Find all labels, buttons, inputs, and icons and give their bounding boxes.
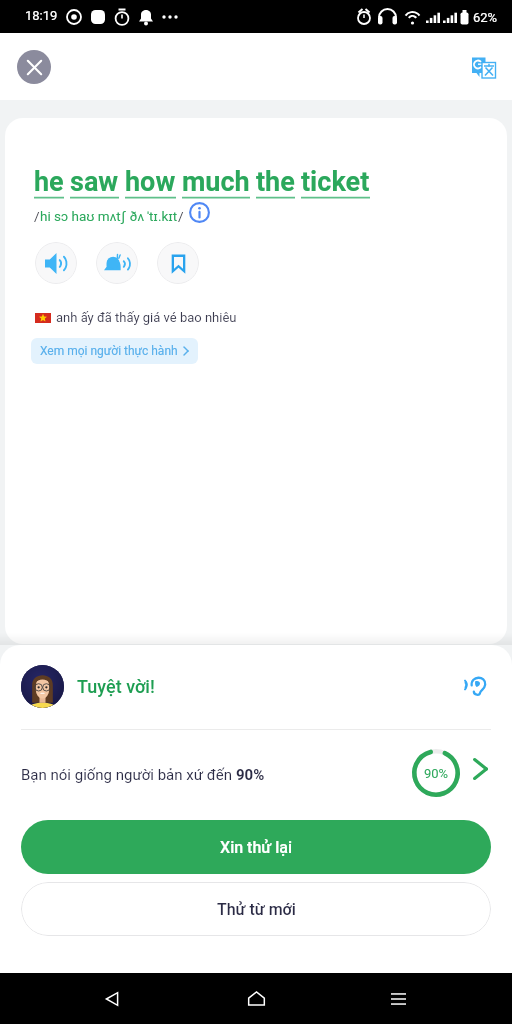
- button[interactable]: Translate: [466, 51, 500, 85]
- button[interactable]: Pronunciation info: [186, 199, 212, 225]
- button[interactable]: Home: [236, 973, 276, 1024]
- staticText: 90%: [236, 766, 265, 784]
- staticText: /: [178, 208, 184, 224]
- staticText: 90%: [424, 766, 449, 781]
- button[interactable]: ticket: [301, 166, 370, 199]
- staticText: the: [256, 166, 295, 198]
- button[interactable]: Play audio: [35, 242, 77, 284]
- button[interactable]: Close: [17, 50, 51, 84]
- staticText: Bạn nói giống người bản xứ đến: [21, 766, 236, 784]
- staticText: ticket: [301, 166, 370, 198]
- staticText: /: [34, 208, 40, 224]
- staticText: anh ấy đã thấy giá vé bao nhiêu: [56, 310, 237, 325]
- staticText: Thử từ mới: [217, 900, 296, 919]
- staticText: Bạn nói giống người bản xứ đến: [21, 766, 236, 784]
- button[interactable]: the: [256, 166, 295, 199]
- button[interactable]: Xin thử lại: [21, 820, 491, 874]
- button[interactable]: Back: [92, 973, 132, 1024]
- button[interactable]: Listen: [457, 670, 487, 700]
- staticText: how: [125, 166, 176, 198]
- button[interactable]: Pronunciation score 90 percent: [412, 749, 460, 797]
- button[interactable]: much: [182, 166, 250, 199]
- staticText: Tuyệt vời!: [77, 676, 155, 697]
- button[interactable]: Play slow audio: [96, 242, 138, 284]
- button[interactable]: Xem mọi người thực hành: [31, 338, 198, 364]
- button[interactable]: Details: [466, 755, 494, 783]
- button[interactable]: Recent apps: [378, 973, 418, 1024]
- staticText: he: [34, 166, 64, 198]
- staticText: Xin thử lại: [220, 838, 293, 857]
- button[interactable]: Thử từ mới: [21, 882, 491, 936]
- staticText: 18:19: [25, 8, 58, 23]
- button[interactable]: he: [34, 166, 64, 199]
- staticText: hi sɔ haʊ mʌtʃ ðʌ ˈtɪ.kɪt: [40, 208, 178, 224]
- button[interactable]: Bookmark: [157, 242, 199, 284]
- staticText: saw: [70, 166, 119, 198]
- button[interactable]: saw: [70, 166, 119, 199]
- staticText: much: [182, 166, 250, 198]
- button[interactable]: how: [125, 166, 176, 199]
- staticText: 62%: [473, 10, 498, 25]
- staticText: Xem mọi người thực hành: [40, 344, 178, 358]
